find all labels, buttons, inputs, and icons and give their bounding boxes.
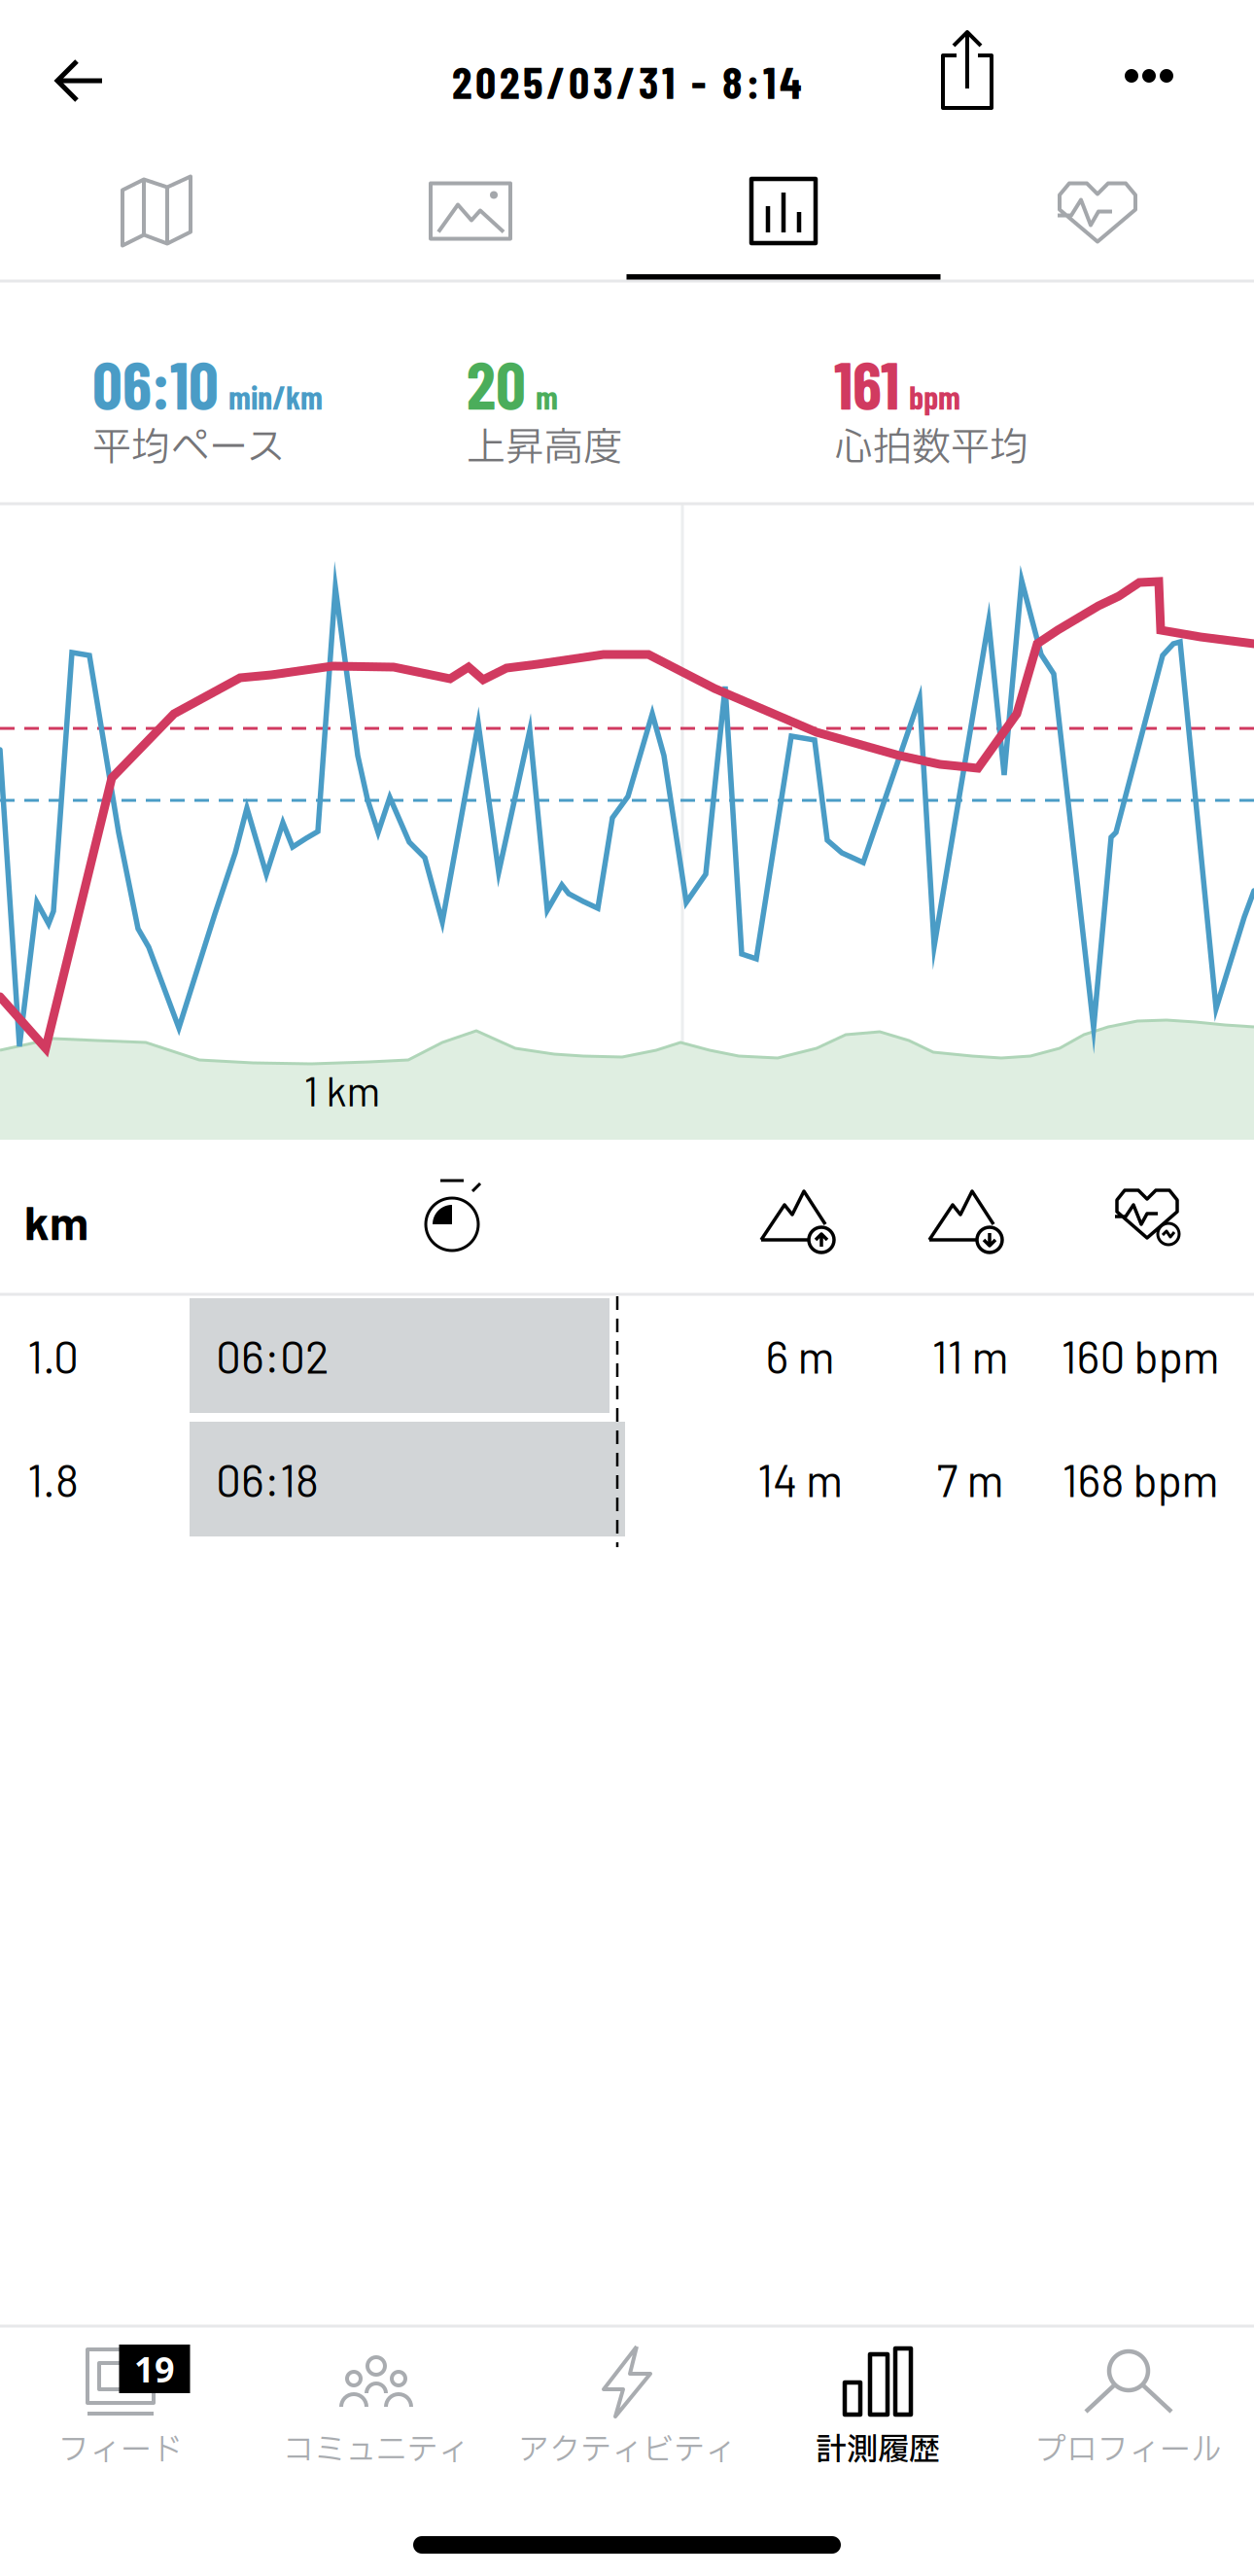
staticText: 06:10 <box>92 343 219 423</box>
button[interactable]: フィード <box>0 2322 246 2497</box>
button[interactable]: アクティビティ <box>502 2322 752 2497</box>
staticText: 168 bpm <box>1062 1452 1219 1506</box>
button[interactable]: 計測履歴 <box>752 2322 1003 2497</box>
button[interactable]: Map <box>79 158 234 265</box>
button[interactable]: Charts <box>706 158 861 265</box>
button[interactable]: Photos <box>393 158 548 265</box>
staticText: 06:02 <box>216 1329 330 1382</box>
staticText: プロフィール <box>1035 2427 1222 2474</box>
staticText: 11 m <box>932 1329 1009 1382</box>
staticText: 1.0 <box>27 1329 79 1382</box>
staticText: 6 m <box>766 1329 835 1382</box>
staticText: アクティビティ <box>518 2427 736 2474</box>
staticText: m <box>536 377 558 416</box>
staticText: 平均ペース <box>92 419 285 477</box>
staticText: bpm <box>909 377 960 416</box>
staticText: km <box>24 1193 88 1249</box>
staticText: 14 m <box>757 1452 843 1506</box>
staticText: 計測履歴 <box>816 2427 940 2474</box>
staticText: 7 m <box>937 1452 1004 1506</box>
staticText: min/km <box>228 377 323 416</box>
staticText: 20 <box>467 343 526 423</box>
button[interactable]: More <box>1110 47 1188 105</box>
staticText: 1 km <box>304 1066 381 1115</box>
staticText: コミュニティ <box>283 2427 469 2474</box>
staticText: 心拍数平均 <box>834 419 1028 477</box>
staticText: フィード <box>58 2427 183 2474</box>
staticText: 上昇高度 <box>467 419 622 477</box>
staticText: 19 <box>134 2346 175 2392</box>
staticText: 160 bpm <box>1061 1329 1219 1382</box>
button[interactable]: プロフィール <box>1003 2322 1254 2497</box>
staticText: 1.8 <box>27 1452 79 1506</box>
staticText: 2025/03/31 - 8:14 <box>452 53 802 108</box>
staticText: 06:18 <box>216 1452 319 1506</box>
staticText: 161 <box>834 343 899 423</box>
button[interactable]: コミュニティ <box>251 2322 502 2497</box>
button[interactable]: Heart rate <box>1020 158 1175 265</box>
button[interactable]: Share <box>928 24 1006 112</box>
button[interactable]: Back <box>36 42 123 120</box>
